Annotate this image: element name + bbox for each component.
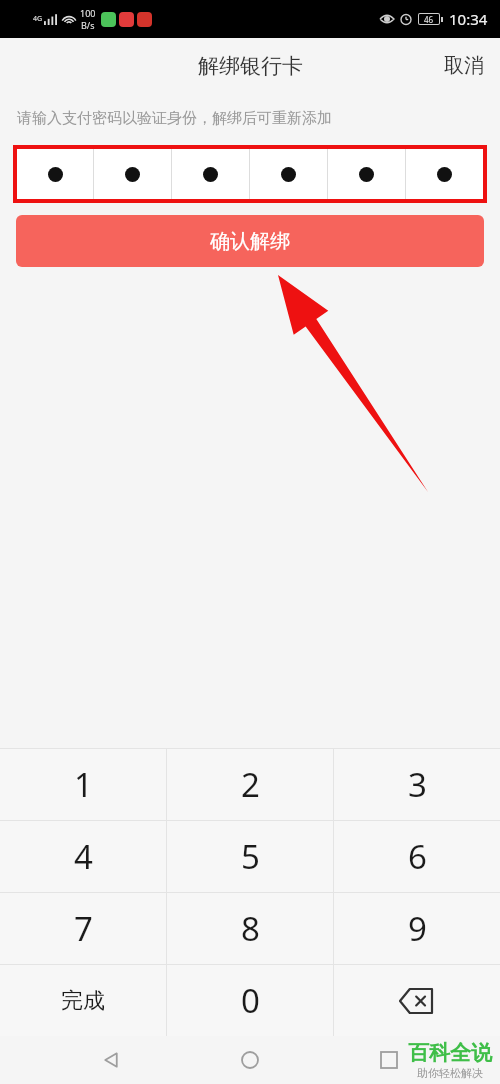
staticText: 100	[80, 7, 96, 19]
staticText: 完成	[61, 987, 105, 1015]
button[interactable]: 9	[334, 893, 500, 964]
button[interactable]: 6	[334, 821, 500, 892]
button[interactable]: Recents	[361, 1036, 417, 1084]
button[interactable]: 完成	[0, 965, 166, 1036]
button[interactable]: Home	[222, 1036, 278, 1084]
staticText: 取消	[444, 53, 484, 78]
staticText: 解绑银行卡	[198, 53, 303, 79]
staticText: 4G	[33, 14, 43, 24]
button[interactable]: 5	[167, 821, 333, 892]
staticText: 7	[74, 906, 93, 951]
staticText: 2	[241, 762, 260, 807]
staticText: 1	[74, 762, 93, 807]
staticText: 46	[424, 14, 434, 24]
button[interactable]: 8	[167, 893, 333, 964]
button[interactable]: 1	[0, 749, 166, 820]
button[interactable]: 7	[0, 893, 166, 964]
button[interactable]: Delete	[334, 965, 500, 1036]
staticText: 百科全说	[408, 1040, 492, 1066]
staticText: 0	[241, 978, 260, 1023]
staticText: 8	[241, 906, 260, 951]
staticText: 助你轻松解决	[417, 1066, 483, 1080]
button[interactable]	[17, 149, 483, 199]
staticText: 10:34	[449, 9, 488, 29]
staticText: 4	[74, 834, 93, 879]
button[interactable]: 确认解绑	[16, 215, 484, 267]
button[interactable]: 4	[0, 821, 166, 892]
button[interactable]: Back	[83, 1036, 139, 1084]
staticText: 9	[408, 906, 427, 951]
button[interactable]: 3	[334, 749, 500, 820]
staticText: B/s	[81, 19, 95, 31]
staticText: 请输入支付密码以验证身份，解绑后可重新添加	[17, 109, 332, 128]
staticText: 5	[241, 834, 260, 879]
staticText: 确认解绑	[210, 229, 290, 254]
staticText: 6	[408, 834, 427, 879]
staticText: 3	[408, 762, 427, 807]
button[interactable]: 2	[167, 749, 333, 820]
button[interactable]: 0	[167, 965, 333, 1036]
button[interactable]: 取消	[428, 45, 500, 86]
